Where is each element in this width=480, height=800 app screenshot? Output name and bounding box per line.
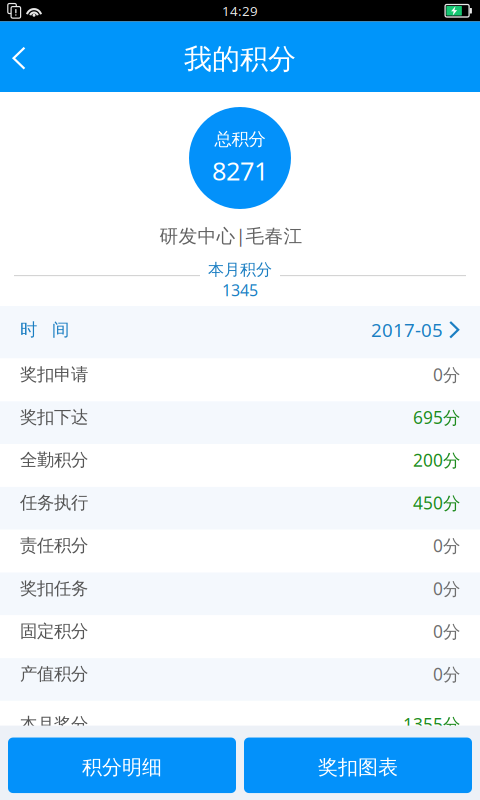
button[interactable]: 全勤积分 bbox=[0, 444, 480, 487]
staticText: 1355分 bbox=[403, 713, 460, 736]
button[interactable]: Back bbox=[0, 31, 40, 83]
staticText: 奖扣图表 bbox=[318, 755, 398, 780]
button[interactable]: 奖扣图表 bbox=[244, 737, 472, 793]
staticText: 0分 bbox=[433, 577, 460, 600]
staticText: 8271 bbox=[212, 154, 268, 187]
button[interactable]: 奖扣申请 bbox=[0, 358, 480, 401]
staticText: 产值积分 bbox=[20, 663, 88, 685]
button[interactable]: 固定积分 bbox=[0, 615, 480, 658]
staticText: 1345 bbox=[222, 279, 258, 301]
staticText: 任务执行 bbox=[20, 492, 88, 513]
staticText: 积分明细 bbox=[82, 755, 162, 780]
staticText: 总积分 bbox=[214, 128, 265, 150]
button[interactable]: 产值积分 bbox=[0, 658, 480, 701]
button[interactable]: 任务执行 bbox=[0, 487, 480, 530]
staticText: 450分 bbox=[413, 491, 460, 514]
staticText: 0分 bbox=[433, 363, 460, 386]
staticText: 695分 bbox=[413, 406, 460, 429]
staticText: 200分 bbox=[413, 448, 460, 471]
staticText: 责任积分 bbox=[20, 535, 88, 556]
button[interactable]: 本月奖分 bbox=[0, 701, 480, 726]
staticText: 奖扣申请 bbox=[20, 364, 88, 385]
staticText: 奖扣任务 bbox=[20, 578, 88, 599]
staticText: 本月奖分 bbox=[20, 714, 88, 735]
staticText: 0分 bbox=[433, 534, 460, 557]
staticText: 2017-05 bbox=[371, 317, 443, 342]
button[interactable]: 奖扣下达 bbox=[0, 401, 480, 444]
staticText: 0分 bbox=[433, 662, 460, 685]
button[interactable]: 积分明细 bbox=[8, 737, 236, 793]
staticText: 奖扣下达 bbox=[20, 407, 88, 428]
staticText: 研发中心|毛春江 bbox=[159, 223, 302, 248]
button[interactable]: 奖扣任务 bbox=[0, 572, 480, 615]
staticText: 我的积分 bbox=[184, 42, 296, 76]
staticText: 本月积分 bbox=[208, 260, 272, 279]
staticText: 14:29 bbox=[222, 2, 258, 20]
staticText: 0分 bbox=[433, 620, 460, 643]
staticText: 全勤积分 bbox=[20, 449, 88, 471]
staticText: 固定积分 bbox=[20, 621, 88, 642]
button[interactable]: 时 间 bbox=[0, 306, 480, 358]
staticText: 时 间 bbox=[20, 319, 69, 340]
button[interactable]: 责任积分 bbox=[0, 530, 480, 572]
